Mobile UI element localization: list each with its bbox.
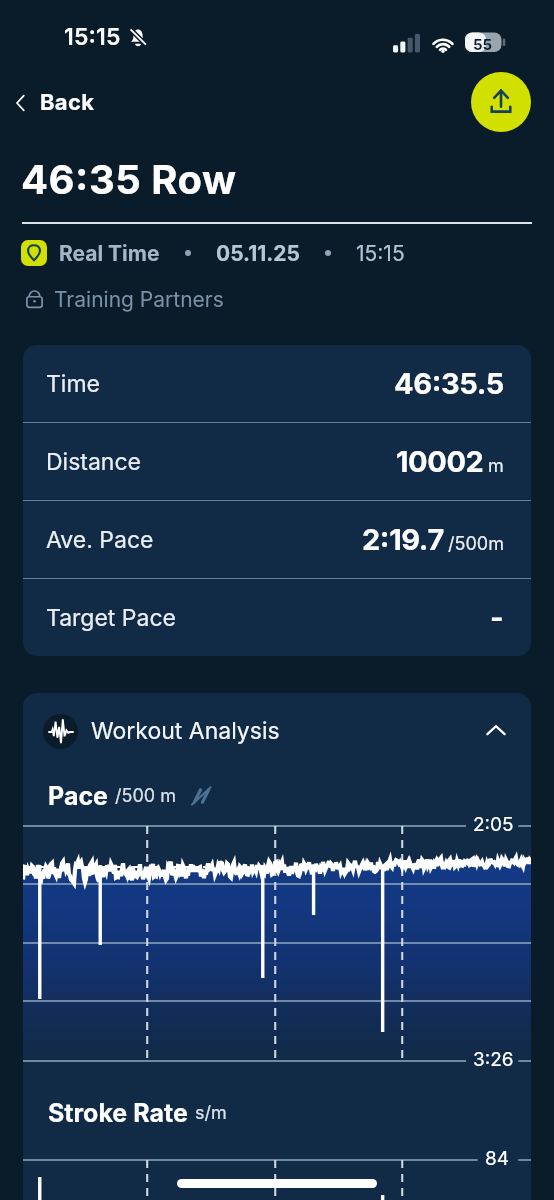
button[interactable]: Share workout	[471, 72, 531, 132]
button[interactable]: Back	[3, 81, 103, 124]
staticText: Pace	[48, 781, 108, 811]
staticText: 46:35 Row	[21, 155, 237, 203]
staticText: s/m	[195, 1102, 227, 1124]
staticText: Back	[40, 89, 95, 116]
staticText: /500 m	[115, 785, 176, 807]
staticText: Ave. Pace	[46, 526, 154, 554]
staticText: Distance	[46, 448, 141, 476]
staticText: Time	[46, 370, 100, 398]
button[interactable]: Distance	[23, 423, 531, 500]
button[interactable]: Collapse	[481, 716, 511, 746]
staticText: 15:15	[64, 23, 121, 51]
staticText: 10002	[396, 444, 484, 479]
staticText: 55	[473, 35, 493, 53]
button[interactable]: Time	[23, 345, 531, 422]
staticText: Workout Analysis	[91, 717, 280, 745]
button[interactable]: Target Pace	[23, 579, 531, 656]
staticText: 2:19.7	[362, 522, 444, 557]
staticText: /500m	[448, 533, 504, 555]
staticText: Real Time	[59, 241, 160, 266]
staticText: 05.11.25	[216, 241, 300, 266]
staticText: 3:26	[473, 1048, 514, 1071]
staticText: 15:15	[356, 241, 405, 266]
staticText: Target Pace	[46, 604, 177, 632]
staticText: Stroke Rate	[48, 1098, 188, 1128]
staticText: m	[488, 455, 504, 477]
staticText: 2:05	[473, 813, 514, 836]
staticText: 46:35.5	[394, 366, 504, 401]
staticText: Training Partners	[54, 287, 224, 312]
button[interactable]: Workout Analysis	[23, 693, 531, 769]
staticText: -	[490, 600, 504, 635]
staticText: 84	[485, 1147, 510, 1170]
button[interactable]: Ave. Pace	[23, 501, 531, 578]
button[interactable]: Training Partners	[23, 287, 224, 312]
